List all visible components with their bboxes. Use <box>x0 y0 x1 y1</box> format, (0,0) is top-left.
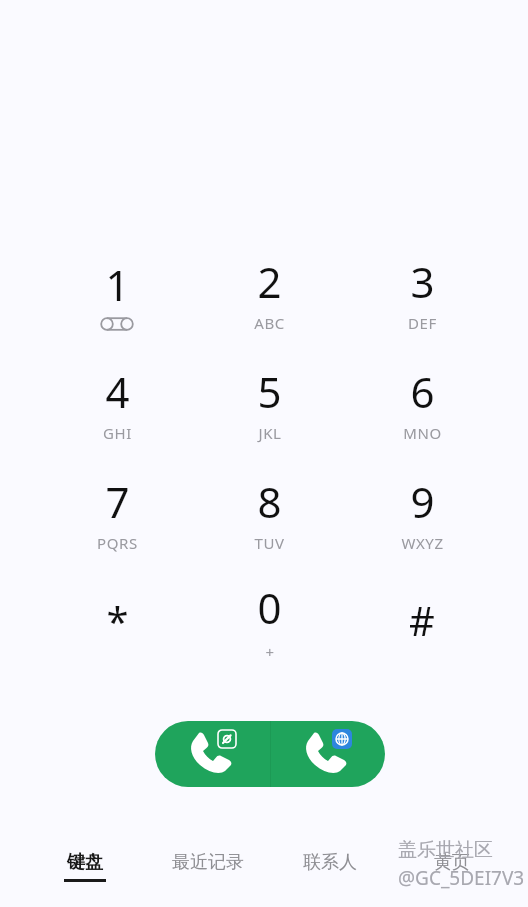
button[interactable]: 黄页 <box>393 842 511 898</box>
staticText: + <box>265 642 275 662</box>
button[interactable]: 键盘 <box>26 842 144 898</box>
button[interactable]: 3 <box>352 241 492 345</box>
staticText: 9 <box>410 473 435 530</box>
staticText: GHI <box>103 423 132 443</box>
button[interactable]: 联系人 <box>271 842 389 898</box>
button[interactable]: 0 <box>199 568 339 672</box>
staticText: 2 <box>257 253 282 310</box>
staticText: 盖乐世社区 <box>398 838 493 862</box>
staticText: 7 <box>105 473 130 530</box>
button[interactable]: 9 <box>352 461 492 565</box>
staticText: # <box>409 593 435 647</box>
button[interactable]: International call <box>270 721 385 787</box>
staticText: 8 <box>257 473 282 530</box>
staticText: @GC_5DEI7V3 <box>398 865 525 891</box>
staticText: MNO <box>403 423 442 443</box>
staticText: DEF <box>408 313 437 333</box>
button[interactable]: 4 <box>47 351 187 455</box>
button[interactable]: 7 <box>47 461 187 565</box>
staticText: 最近记录 <box>172 851 244 874</box>
staticText: JKL <box>258 423 282 443</box>
staticText: 联系人 <box>303 851 357 874</box>
button[interactable]: # <box>352 568 492 672</box>
staticText: 5 <box>257 363 282 420</box>
staticText: 1 <box>105 256 130 313</box>
button[interactable]: * <box>47 568 187 672</box>
button[interactable]: 2 <box>199 241 339 345</box>
button[interactable]: 6 <box>352 351 492 455</box>
button[interactable]: 5 <box>199 351 339 455</box>
staticText: * <box>106 593 129 647</box>
staticText: 0 <box>257 579 282 636</box>
button[interactable]: 1 <box>47 241 187 345</box>
staticText: WXYZ <box>401 533 444 553</box>
staticText: ABC <box>254 313 285 333</box>
button[interactable]: Call <box>155 721 270 787</box>
staticText: 4 <box>105 363 130 420</box>
staticText: TUV <box>254 533 285 553</box>
staticText: PQRS <box>97 533 138 553</box>
staticText: 键盘 <box>67 851 103 874</box>
staticText: 3 <box>410 253 435 310</box>
staticText: 黄页 <box>434 851 470 874</box>
button[interactable]: 8 <box>199 461 339 565</box>
staticText: 6 <box>410 363 435 420</box>
button[interactable]: 最近记录 <box>149 842 267 898</box>
